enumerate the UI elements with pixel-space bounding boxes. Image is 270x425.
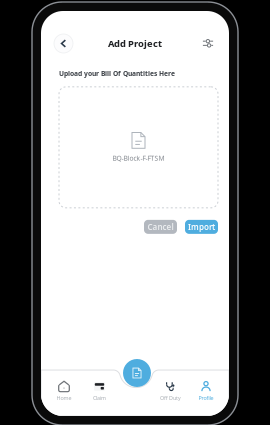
button[interactable]: Import [185,220,218,234]
button[interactable]: Profile [191,380,221,402]
button[interactable]: Off Duty [155,380,185,402]
button[interactable]: Home [49,380,79,402]
staticText: Cancel [147,221,173,232]
button[interactable]: Claim [84,380,114,402]
staticText: Import [188,221,215,232]
button[interactable]: Cancel [144,220,177,234]
staticText: Claim [93,394,106,402]
staticText: Off Duty [160,394,181,402]
staticText: Profile [198,394,213,402]
button[interactable]: Back [54,34,73,53]
staticText: Add Project [108,37,162,50]
staticText: BQ-Block-F-FTSM [112,154,164,163]
button[interactable]: Add document [123,359,151,387]
button[interactable]: Filter settings [200,35,216,51]
staticText: Home [56,394,71,402]
staticText: Upload your Bill Of Quantities Here [59,69,175,78]
